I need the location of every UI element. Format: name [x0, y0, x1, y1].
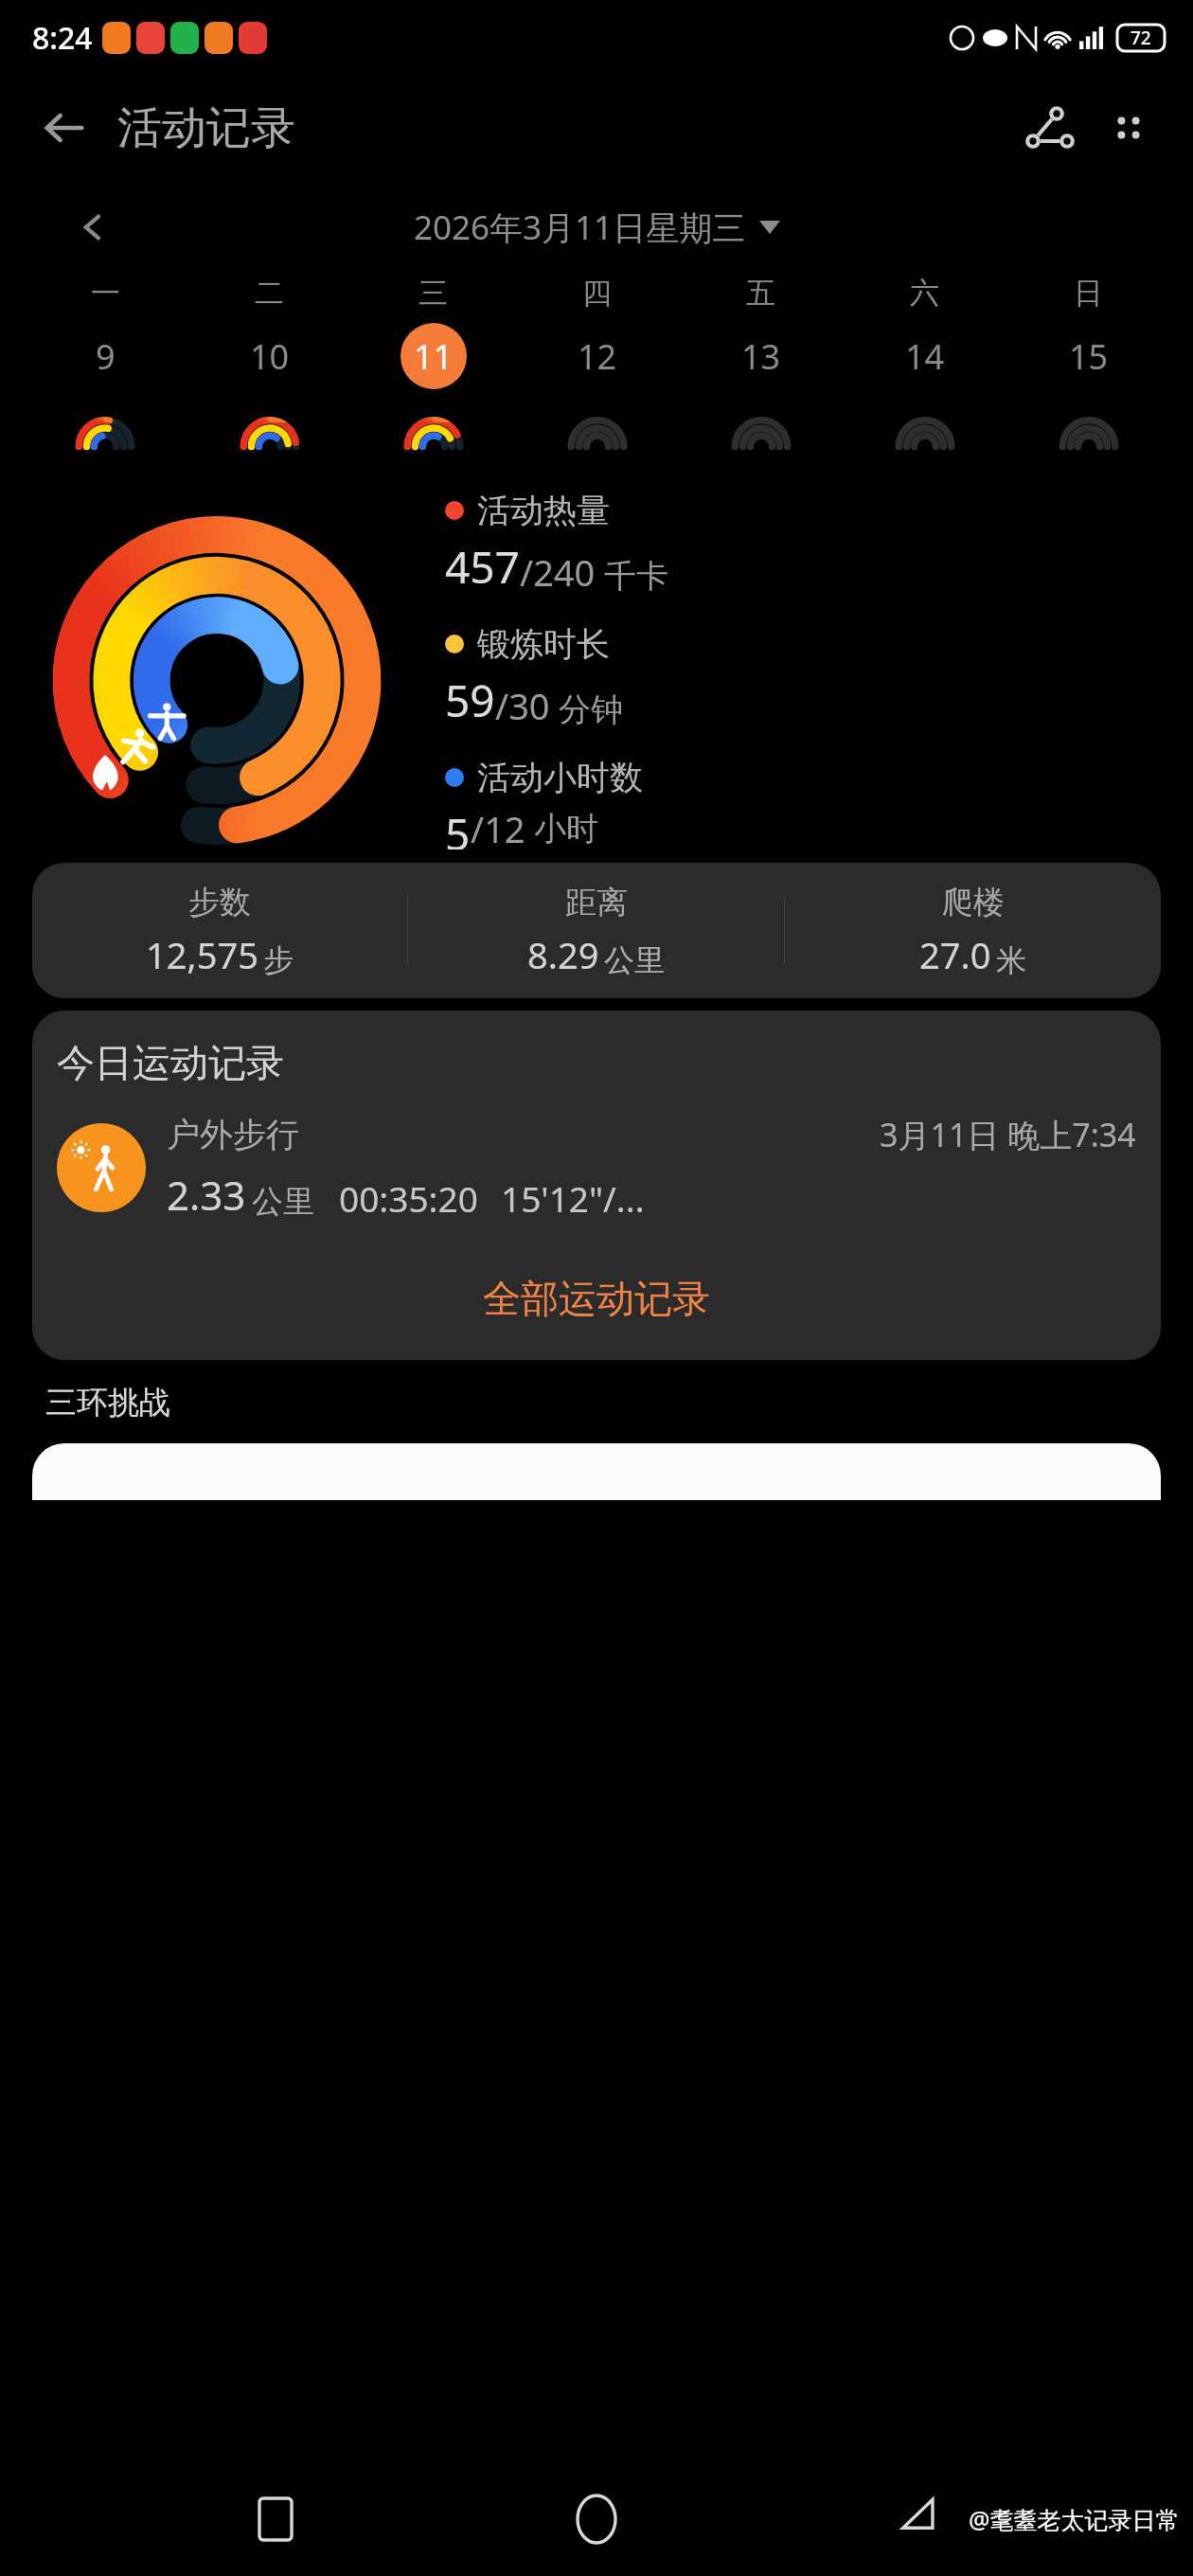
staticText: 公里 [252, 1182, 314, 1222]
staticText: /30 [495, 681, 550, 730]
staticText: 13 [741, 333, 781, 380]
staticText: 一 [91, 275, 120, 312]
button[interactable]: 15 [1056, 323, 1122, 389]
staticText: 11 [414, 333, 454, 380]
staticText: 米 [996, 941, 1026, 979]
staticText: 活动热量 [477, 490, 610, 531]
staticText: 5 [445, 804, 471, 850]
button[interactable]: 13 [728, 323, 794, 389]
staticText: 千卡 [604, 556, 668, 597]
staticText: 14 [905, 333, 945, 380]
button[interactable]: 户外步行 [57, 1113, 1136, 1222]
staticText: 活动记录 [117, 100, 295, 156]
button[interactable]: Share [1009, 88, 1089, 168]
staticText: 3月11日 晚上7:34 [880, 1113, 1136, 1156]
staticText: 三环挑战 [45, 1383, 170, 1422]
staticText: @耄耋老太记录日常 [969, 2503, 1180, 2535]
button[interactable]: 步数 [32, 863, 1161, 998]
button[interactable]: More options [1089, 88, 1168, 168]
staticText: 8.29 [527, 930, 599, 979]
staticText: 59 [445, 671, 495, 730]
button[interactable]: 全部运动记录 [32, 1256, 1161, 1341]
staticText: 10 [250, 333, 290, 380]
staticText: 今日运动记录 [57, 1039, 284, 1086]
staticText: 8:24 [32, 17, 93, 59]
staticText: 六 [910, 275, 939, 312]
button[interactable]: 10 [237, 323, 303, 389]
staticText: 户外步行 [167, 1114, 299, 1155]
button[interactable]: Back [28, 93, 98, 163]
staticText: 12 [578, 333, 617, 380]
staticText: 五 [746, 275, 775, 312]
staticText: 分钟 [559, 689, 623, 730]
staticText: 二 [255, 275, 284, 312]
button[interactable]: 14 [892, 323, 958, 389]
staticText: 日 [1074, 275, 1103, 312]
staticText: 锻炼时长 [477, 623, 610, 665]
button[interactable]: Previous day [64, 199, 121, 256]
staticText: 12,575 [146, 930, 258, 979]
staticText: 2.33 [167, 1168, 246, 1222]
staticText: 72 [1131, 26, 1151, 50]
button[interactable]: Back [872, 2474, 963, 2565]
staticText: 9 [96, 333, 116, 380]
staticText: 2026年3月11日星期三 [414, 205, 746, 250]
staticText: 小时 [534, 809, 598, 850]
staticText: 27.0 [919, 930, 991, 979]
staticText: /240 [520, 547, 596, 597]
staticText: 距离 [565, 883, 628, 922]
staticText: 步 [263, 941, 294, 979]
staticText: 三 [418, 275, 448, 312]
button[interactable]: 11 [401, 323, 467, 389]
staticText: 公里 [604, 941, 665, 979]
staticText: 457 [445, 537, 520, 597]
button[interactable]: 9 [72, 323, 138, 389]
staticText: 步数 [188, 883, 251, 922]
staticText: /12 [471, 804, 525, 850]
button[interactable]: Recents [230, 2474, 321, 2565]
staticText: 爬楼 [942, 883, 1005, 922]
staticText: 四 [582, 275, 612, 312]
staticText: 全部运动记录 [483, 1275, 710, 1322]
button[interactable]: Home [551, 2474, 642, 2565]
button[interactable] [32, 1443, 1161, 1500]
staticText: 00:35:20 [339, 1174, 478, 1222]
button[interactable]: 12 [564, 323, 631, 389]
staticText: 15'12"/... [501, 1174, 645, 1222]
staticText: 15 [1069, 333, 1109, 380]
staticText: 活动小时数 [477, 757, 643, 798]
